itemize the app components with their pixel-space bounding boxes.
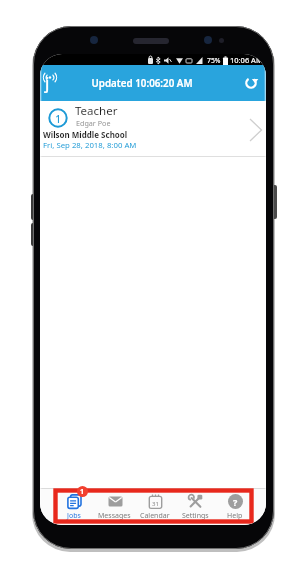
staticText: Fri, Sep 28, 2018, 8:00 AM bbox=[43, 140, 137, 151]
staticText: Wilson Middle School bbox=[43, 129, 128, 140]
staticText: Help bbox=[227, 511, 243, 521]
button[interactable]: Settings bbox=[175, 488, 215, 525]
staticText: j bbox=[45, 72, 50, 94]
button[interactable]: Jobs bbox=[53, 488, 94, 525]
staticText: Teacher bbox=[75, 103, 118, 119]
staticText: 1 bbox=[49, 112, 67, 126]
button[interactable]: ? bbox=[215, 488, 255, 525]
staticText: ? bbox=[233, 496, 238, 508]
button[interactable]: 31 bbox=[135, 488, 175, 525]
button[interactable]: 1 bbox=[40, 101, 266, 157]
staticText: 10:06 AM bbox=[230, 55, 263, 65]
staticText: 1 bbox=[80, 487, 85, 497]
staticText: Messages bbox=[98, 511, 131, 521]
button[interactable]: Messages bbox=[94, 488, 135, 525]
staticText: Jobs bbox=[67, 511, 81, 521]
staticText: Settings bbox=[182, 511, 209, 521]
button[interactable] bbox=[42, 73, 60, 97]
staticText: Updated 10:06:20 AM bbox=[40, 77, 244, 90]
staticText: 75% bbox=[207, 56, 221, 65]
staticText: Calendar bbox=[140, 511, 170, 521]
staticText: 31 bbox=[152, 500, 159, 508]
staticText: Edgar Poe bbox=[76, 118, 111, 128]
button[interactable] bbox=[245, 77, 257, 89]
